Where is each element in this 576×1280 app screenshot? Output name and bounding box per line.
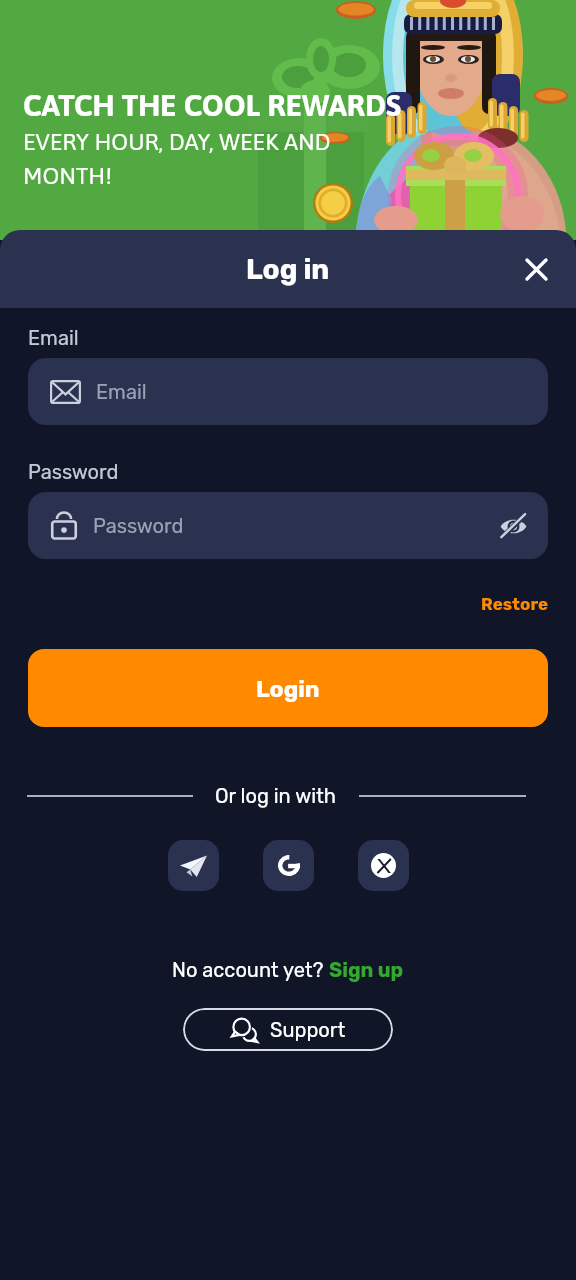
button[interactable]: Telegram [168, 840, 219, 891]
staticText: CATCH THE COOL REWARDS [23, 88, 401, 122]
staticText: Email [28, 326, 79, 350]
button[interactable]: Sign up [329, 958, 404, 982]
button[interactable]: Show password [496, 509, 530, 543]
staticText: Or log in with [215, 784, 337, 808]
staticText: EVERY HOUR, DAY, WEEK AND MONTH! [23, 129, 331, 189]
staticText: No account yet? [172, 958, 329, 982]
staticText: Log in [246, 253, 330, 286]
button[interactable]: Login [28, 649, 548, 727]
button[interactable]: Password [28, 492, 548, 559]
button[interactable]: X [358, 840, 409, 891]
staticText: Support [270, 1018, 346, 1042]
staticText: Email [96, 380, 147, 404]
staticText: Login [256, 675, 320, 702]
button[interactable]: Email [28, 358, 548, 425]
button[interactable]: Restore [477, 590, 553, 618]
button[interactable]: Close [516, 249, 556, 289]
button[interactable]: Google [263, 840, 314, 891]
staticText: Password [28, 460, 119, 484]
staticText: Password [93, 514, 184, 538]
button[interactable]: Support [183, 1008, 393, 1051]
